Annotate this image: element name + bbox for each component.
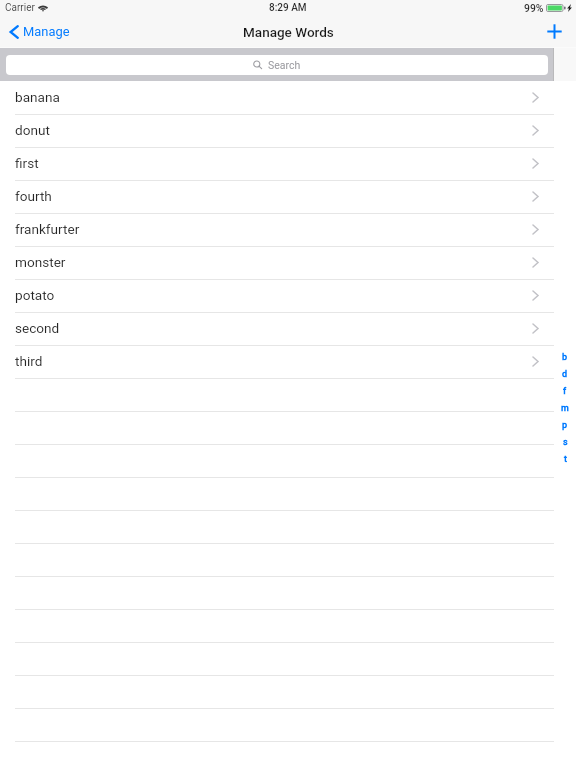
button[interactable]: banana (0, 82, 554, 115)
staticText: Search (268, 59, 301, 71)
button[interactable]: second (0, 313, 554, 346)
button[interactable]: donut (0, 115, 554, 148)
staticText: donut (15, 122, 50, 138)
button[interactable]: Manage (0, 20, 78, 43)
staticText: 8:29 AM (269, 2, 307, 14)
button[interactable]: b (557, 349, 573, 366)
staticText: d (562, 369, 568, 380)
staticText: m (561, 403, 569, 414)
button[interactable]: fourth (0, 181, 554, 214)
button[interactable]: potato (0, 280, 554, 313)
button[interactable]: t (557, 451, 573, 468)
staticText: frankfurter (15, 221, 80, 237)
staticText: monster (15, 254, 66, 270)
button[interactable]: d (557, 366, 573, 383)
staticText: Manage Words (243, 24, 334, 40)
staticText: potato (15, 287, 55, 303)
staticText: first (15, 155, 39, 171)
staticText: fourth (15, 188, 52, 204)
staticText: p (562, 420, 568, 431)
button[interactable]: third (0, 346, 554, 379)
button[interactable]: p (557, 417, 573, 434)
button[interactable]: Add word (536, 19, 576, 44)
staticText: 99% (524, 2, 544, 14)
button[interactable]: Search (6, 55, 548, 75)
button[interactable]: m (557, 400, 573, 417)
button[interactable]: s (557, 434, 573, 451)
staticText: s (563, 437, 568, 448)
staticText: t (564, 454, 567, 465)
button[interactable]: first (0, 148, 554, 181)
staticText: f (563, 386, 567, 397)
staticText: banana (15, 89, 60, 105)
staticText: Carrier (5, 2, 35, 14)
button[interactable]: monster (0, 247, 554, 280)
staticText: third (15, 353, 43, 369)
staticText: b (562, 352, 568, 363)
button[interactable]: frankfurter (0, 214, 554, 247)
staticText: second (15, 320, 60, 336)
staticText: Manage (23, 24, 70, 39)
button[interactable]: f (557, 383, 573, 400)
